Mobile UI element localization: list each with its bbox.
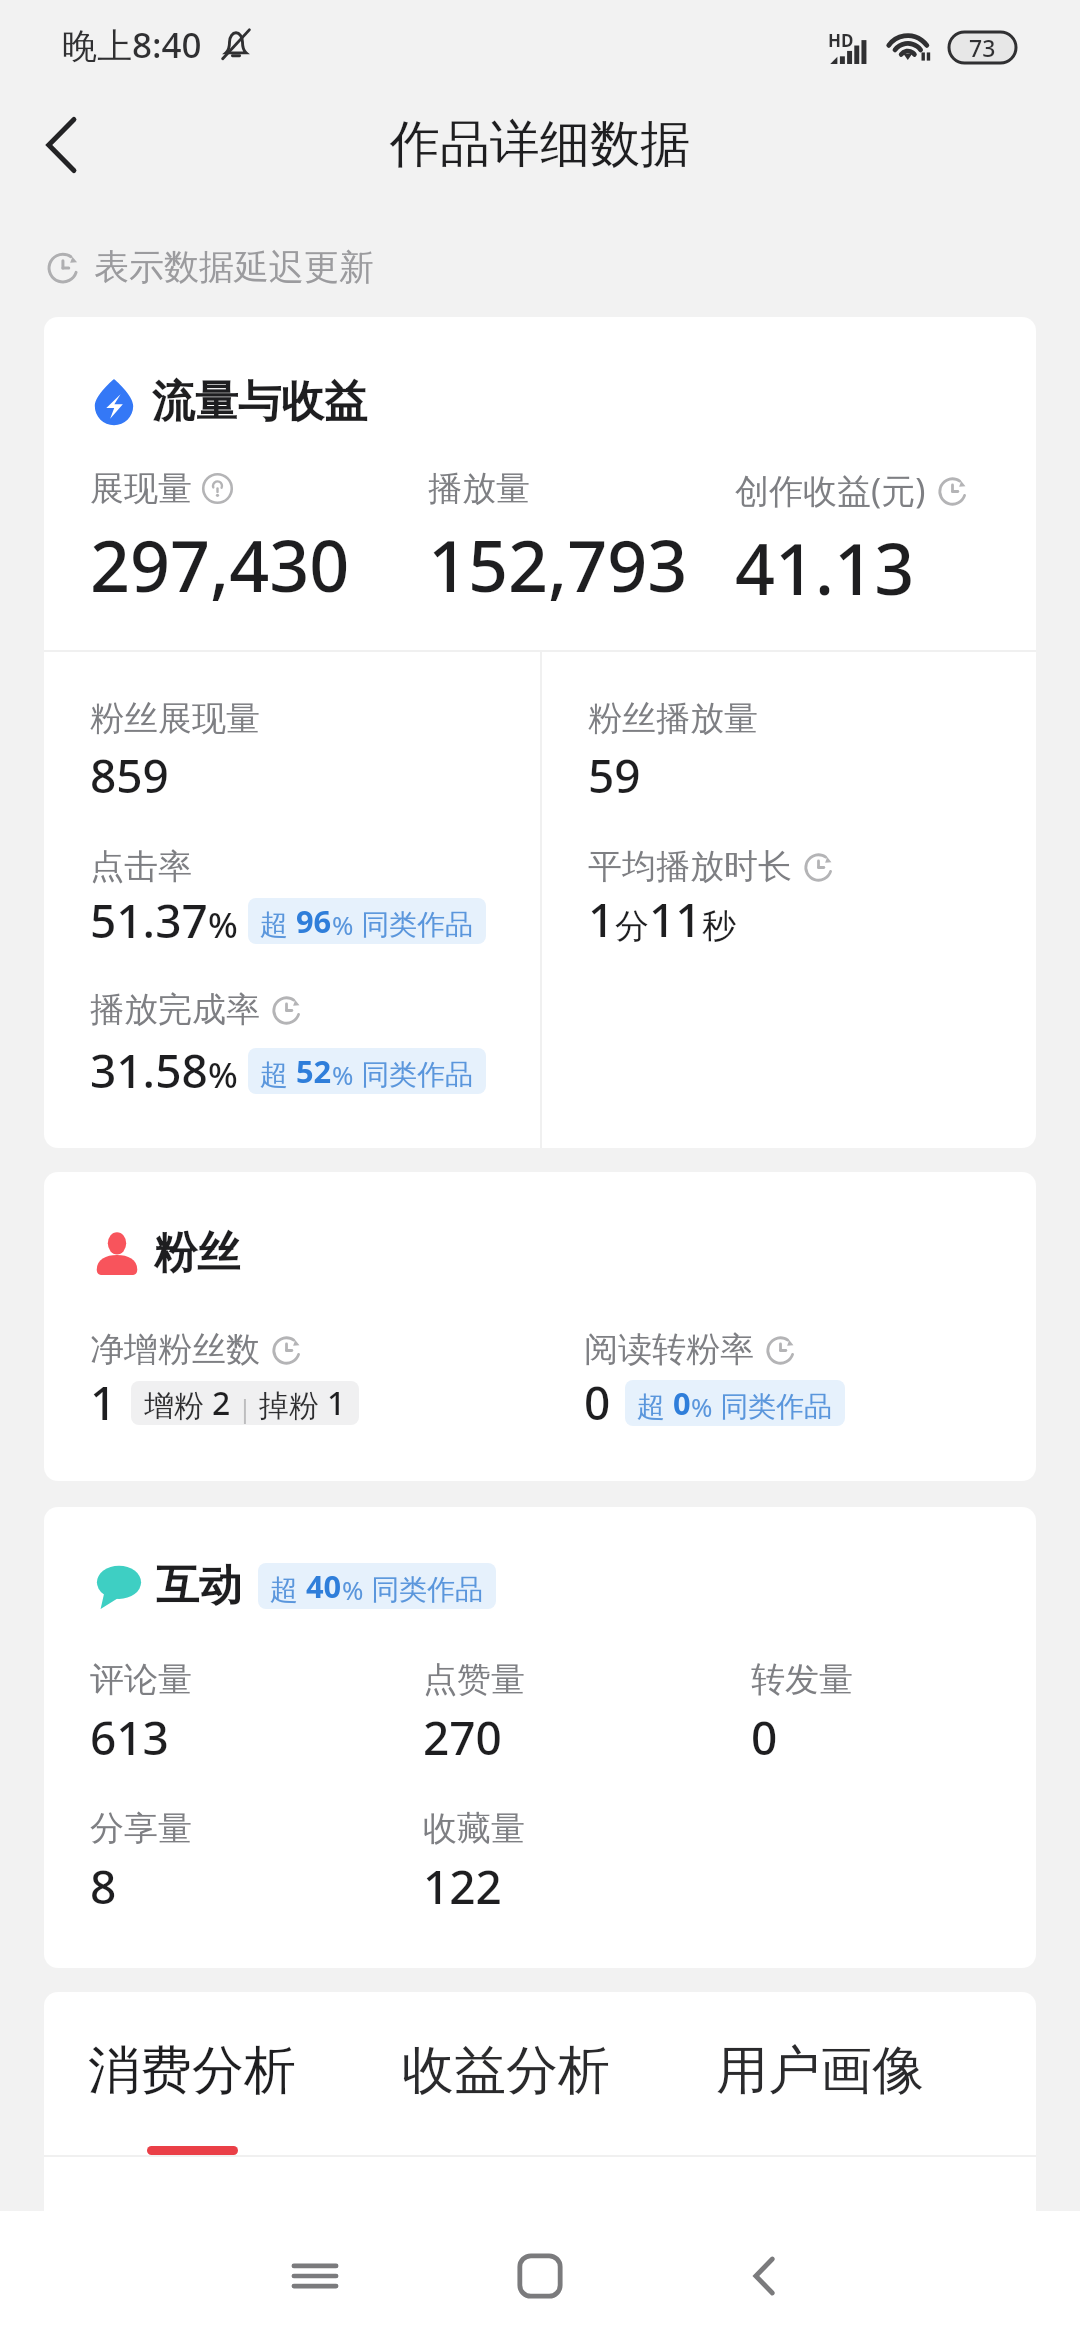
staticText: 点赞量 (423, 1658, 525, 1701)
staticText: % (208, 901, 238, 949)
staticText: 1 (588, 888, 615, 951)
staticText: | (231, 1390, 259, 1425)
staticText: 流量与收益 (152, 375, 367, 429)
staticText: 超 (637, 1386, 673, 1424)
staticText: 同类作品 (354, 1054, 474, 1092)
staticText: 超 (260, 1054, 296, 1092)
staticText: 晚上8:40 (62, 21, 202, 69)
staticText: 收藏量 (423, 1807, 525, 1850)
staticText: 297,430 (90, 517, 350, 612)
staticText: 分 (615, 905, 649, 948)
staticText: 超 (260, 904, 296, 942)
staticText: 平均播放时长 (588, 845, 792, 888)
staticText: 613 (90, 1706, 169, 1769)
staticText: 0 (751, 1706, 778, 1769)
staticText: % (208, 1051, 238, 1099)
staticText: 净增粉丝数 (90, 1328, 260, 1371)
staticText: 41.13 (735, 520, 915, 615)
button[interactable]: 收益分析 (402, 2038, 716, 2155)
staticText: 0 (673, 1382, 691, 1424)
staticText: 创作收益(元) (735, 467, 926, 513)
staticText: 31.58 (90, 1039, 208, 1102)
staticText: 粉丝播放量 (588, 697, 758, 740)
staticText: HD (828, 29, 854, 52)
staticText: 播放量 (428, 467, 530, 510)
staticText: 超 (270, 1569, 306, 1607)
staticText: 用户画像 (716, 2038, 924, 2104)
staticText: % (342, 1572, 364, 1607)
staticText: 分享量 (90, 1807, 192, 1850)
staticText: 2 (212, 1381, 231, 1425)
staticText: 同类作品 (364, 1569, 484, 1607)
button[interactable]: Back (14, 98, 108, 192)
staticText: 粉丝展现量 (90, 697, 260, 740)
staticText: 掉粉 (259, 1384, 327, 1425)
staticText: 8 (90, 1855, 117, 1918)
staticText: % (332, 907, 354, 942)
staticText: 59 (588, 744, 641, 807)
staticText: 消费分析 (88, 2038, 296, 2104)
staticText: 粉丝 (154, 1226, 240, 1280)
staticText: 互动 (156, 1559, 242, 1613)
staticText: 122 (423, 1855, 502, 1918)
staticText: 270 (423, 1706, 502, 1769)
staticText: 转发量 (751, 1658, 853, 1701)
staticText: 0 (584, 1371, 611, 1434)
staticText: 1 (90, 1371, 117, 1434)
staticText: 阅读转粉率 (584, 1328, 754, 1371)
staticText: 展现量 (90, 467, 192, 510)
staticText: 表示数据延迟更新 (94, 245, 374, 289)
button[interactable]: 消费分析 (88, 2038, 402, 2155)
staticText: % (691, 1389, 713, 1424)
staticText: 40 (306, 1565, 342, 1607)
staticText: % (332, 1057, 354, 1092)
staticText: 收益分析 (402, 2038, 610, 2104)
button[interactable]: Home (485, 2221, 595, 2331)
button[interactable]: Back (710, 2221, 820, 2331)
staticText: 11 (649, 888, 702, 951)
staticText: 评论量 (90, 1658, 192, 1701)
staticText: 播放完成率 (90, 988, 260, 1031)
button[interactable]: 用户画像 (716, 2038, 1030, 2155)
staticText: 96 (296, 900, 332, 942)
staticText: 点击率 (90, 845, 192, 888)
staticText: 秒 (702, 905, 736, 948)
staticText: 增粉 (144, 1384, 212, 1425)
staticText: 51.37 (90, 889, 208, 952)
staticText: 同类作品 (713, 1386, 833, 1424)
button[interactable]: Recent apps (260, 2221, 370, 2331)
staticText: 同类作品 (354, 904, 474, 942)
staticText: 152,793 (428, 517, 688, 612)
staticText: 作品详细数据 (390, 113, 690, 176)
staticText: 52 (296, 1050, 332, 1092)
staticText: 859 (90, 744, 169, 807)
staticText: 73 (969, 32, 996, 63)
staticText: 1 (327, 1381, 346, 1425)
